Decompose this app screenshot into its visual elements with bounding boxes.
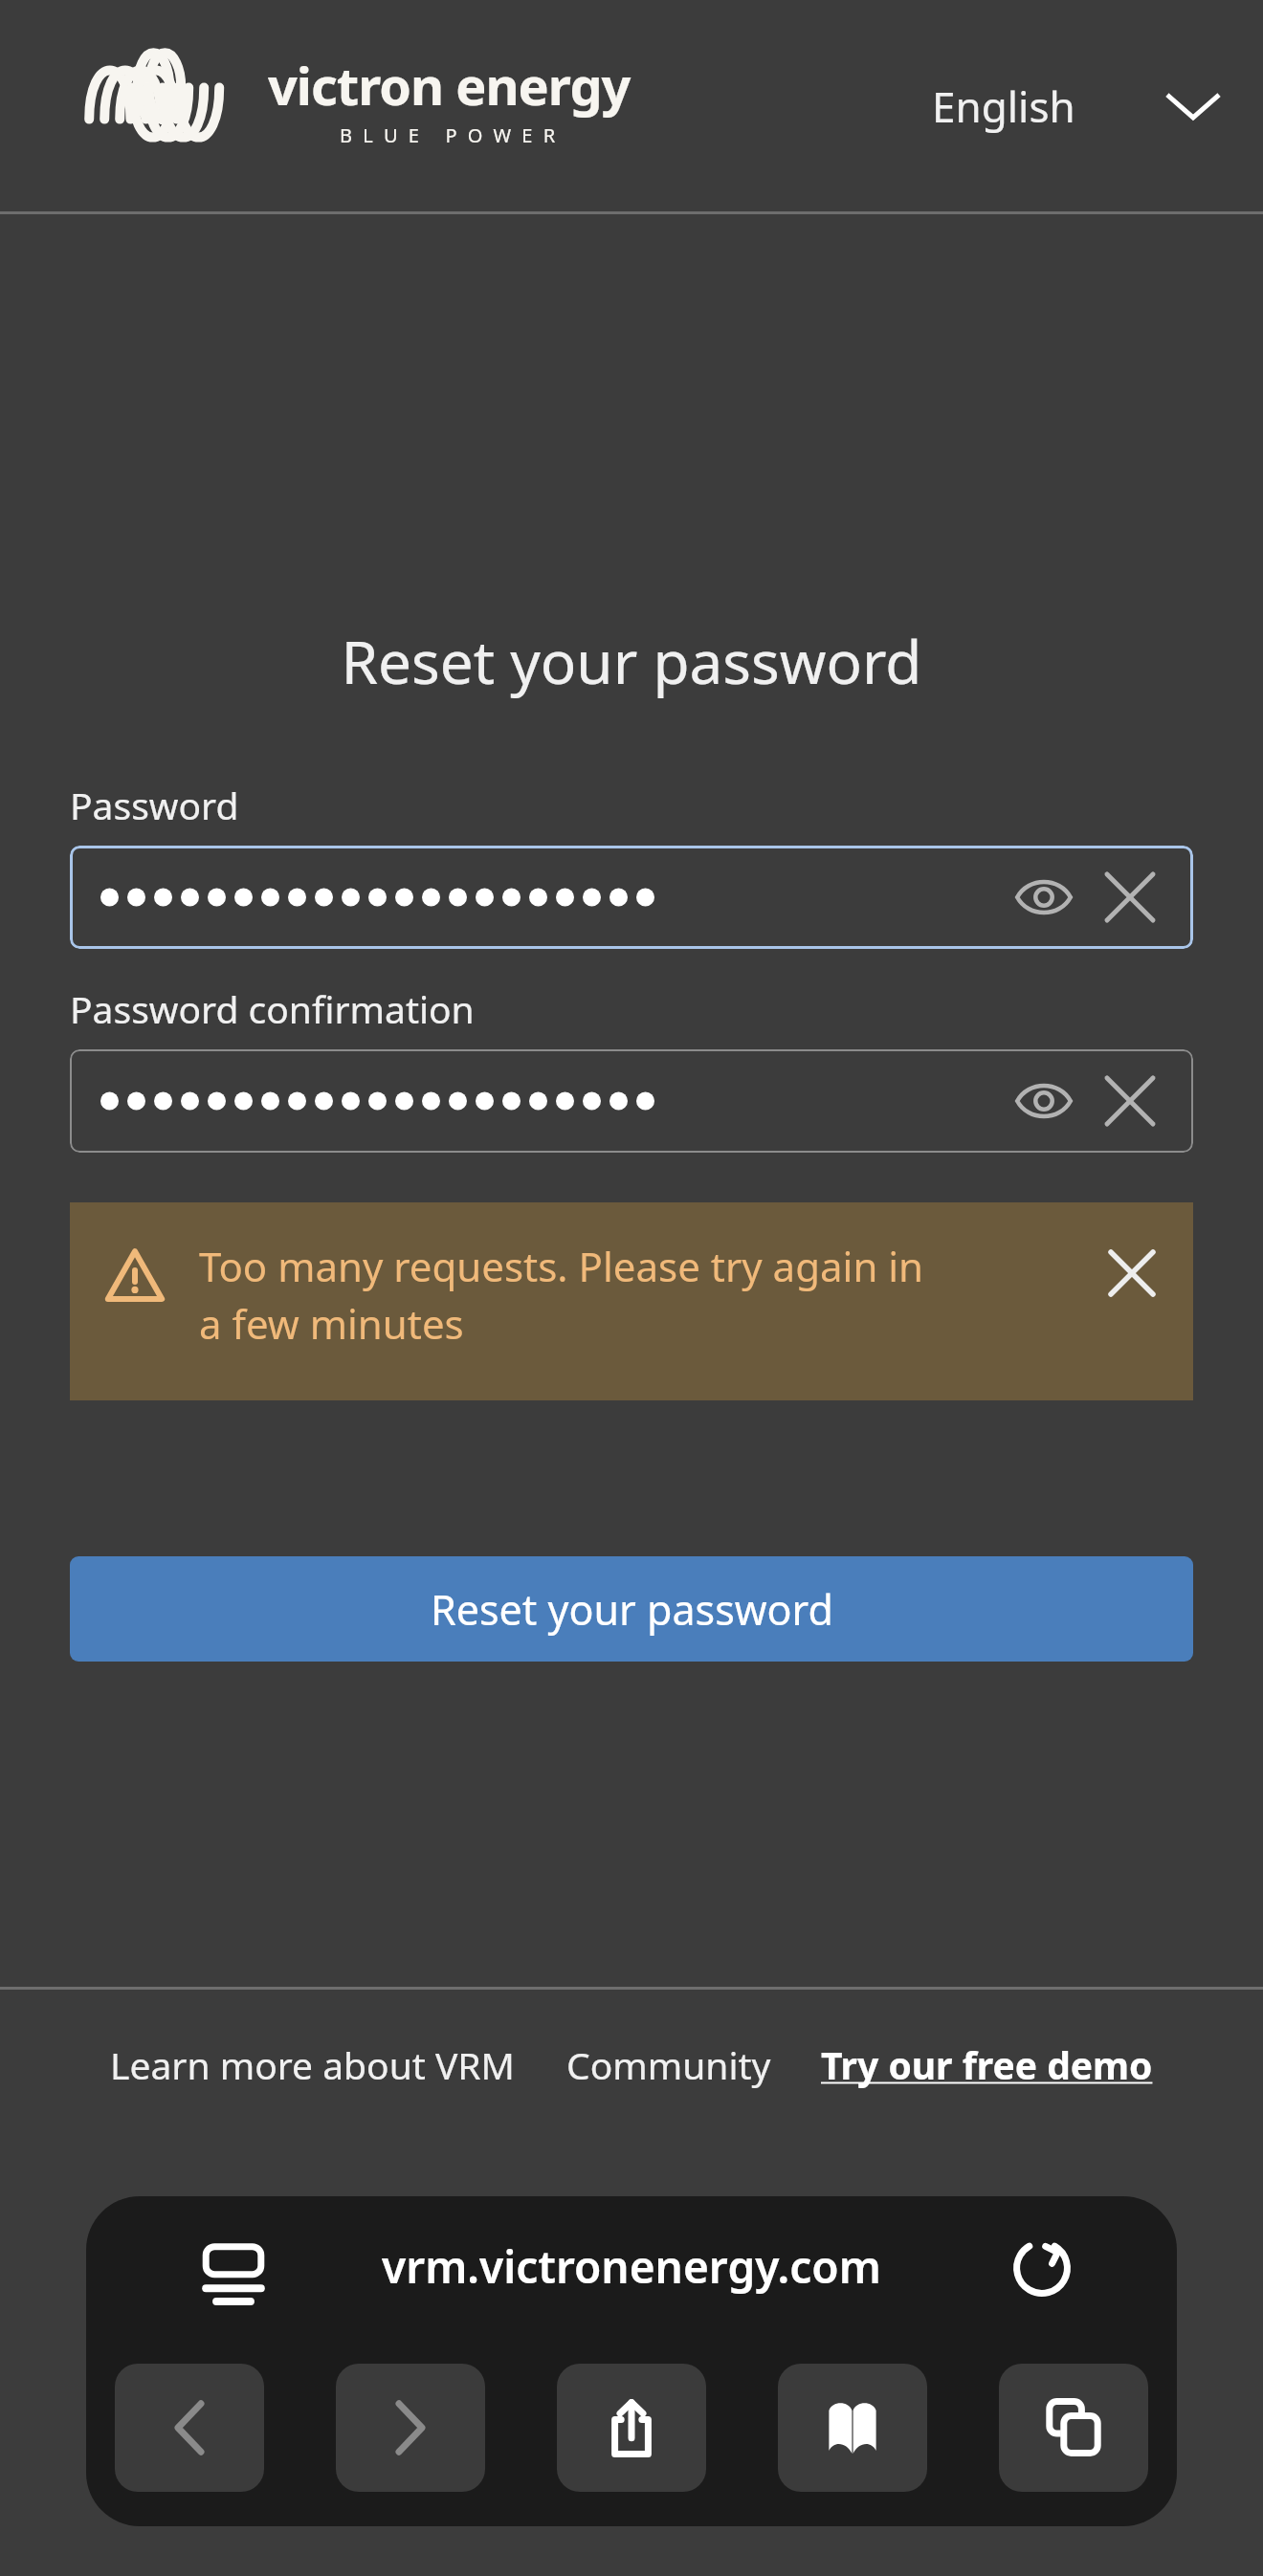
button[interactable]: Reload page <box>1010 2236 1074 2300</box>
staticText: English <box>932 77 1075 135</box>
button[interactable]: Tabs <box>999 2364 1148 2492</box>
button[interactable]: Try our free demo <box>819 2039 1155 2090</box>
staticText: B L U E P O W E R <box>340 122 559 148</box>
button[interactable]: Share <box>557 2364 706 2492</box>
button[interactable]: Show password <box>1008 1065 1080 1137</box>
staticText: Password confirmation <box>70 983 475 1034</box>
button[interactable]: Learn more about VRM <box>108 2039 517 2090</box>
button[interactable]: Page settings <box>203 2244 264 2307</box>
button[interactable]: Show password <box>70 846 1193 949</box>
staticText: Too many requests. Please try again in a… <box>199 1239 924 1351</box>
button[interactable]: Dismiss message <box>1096 1237 1168 1310</box>
staticText: vrm.victronenergy.com <box>382 2236 881 2297</box>
button[interactable]: Bookmarks <box>778 2364 927 2492</box>
button[interactable]: Forward <box>336 2364 485 2492</box>
button[interactable]: Reset your password <box>70 1556 1193 1662</box>
staticText: Reset your password <box>431 1581 833 1638</box>
staticText: victron energy <box>268 50 631 121</box>
staticText: Password <box>70 780 239 830</box>
button[interactable]: Clear password <box>1094 1065 1166 1137</box>
button[interactable]: Community <box>565 2039 773 2090</box>
button[interactable]: Clear password <box>1094 861 1166 934</box>
button[interactable]: Show password <box>70 1049 1193 1153</box>
staticText: Learn more about VRM <box>110 2039 515 2090</box>
button[interactable]: Show password <box>1008 861 1080 934</box>
staticText: Community <box>566 2039 771 2090</box>
button[interactable]: Back <box>115 2364 264 2492</box>
staticText: Reset your password <box>0 621 1263 701</box>
staticText: Try our free demo <box>821 2039 1153 2090</box>
other: Change language <box>1152 65 1234 147</box>
button[interactable]: English <box>932 65 1234 147</box>
